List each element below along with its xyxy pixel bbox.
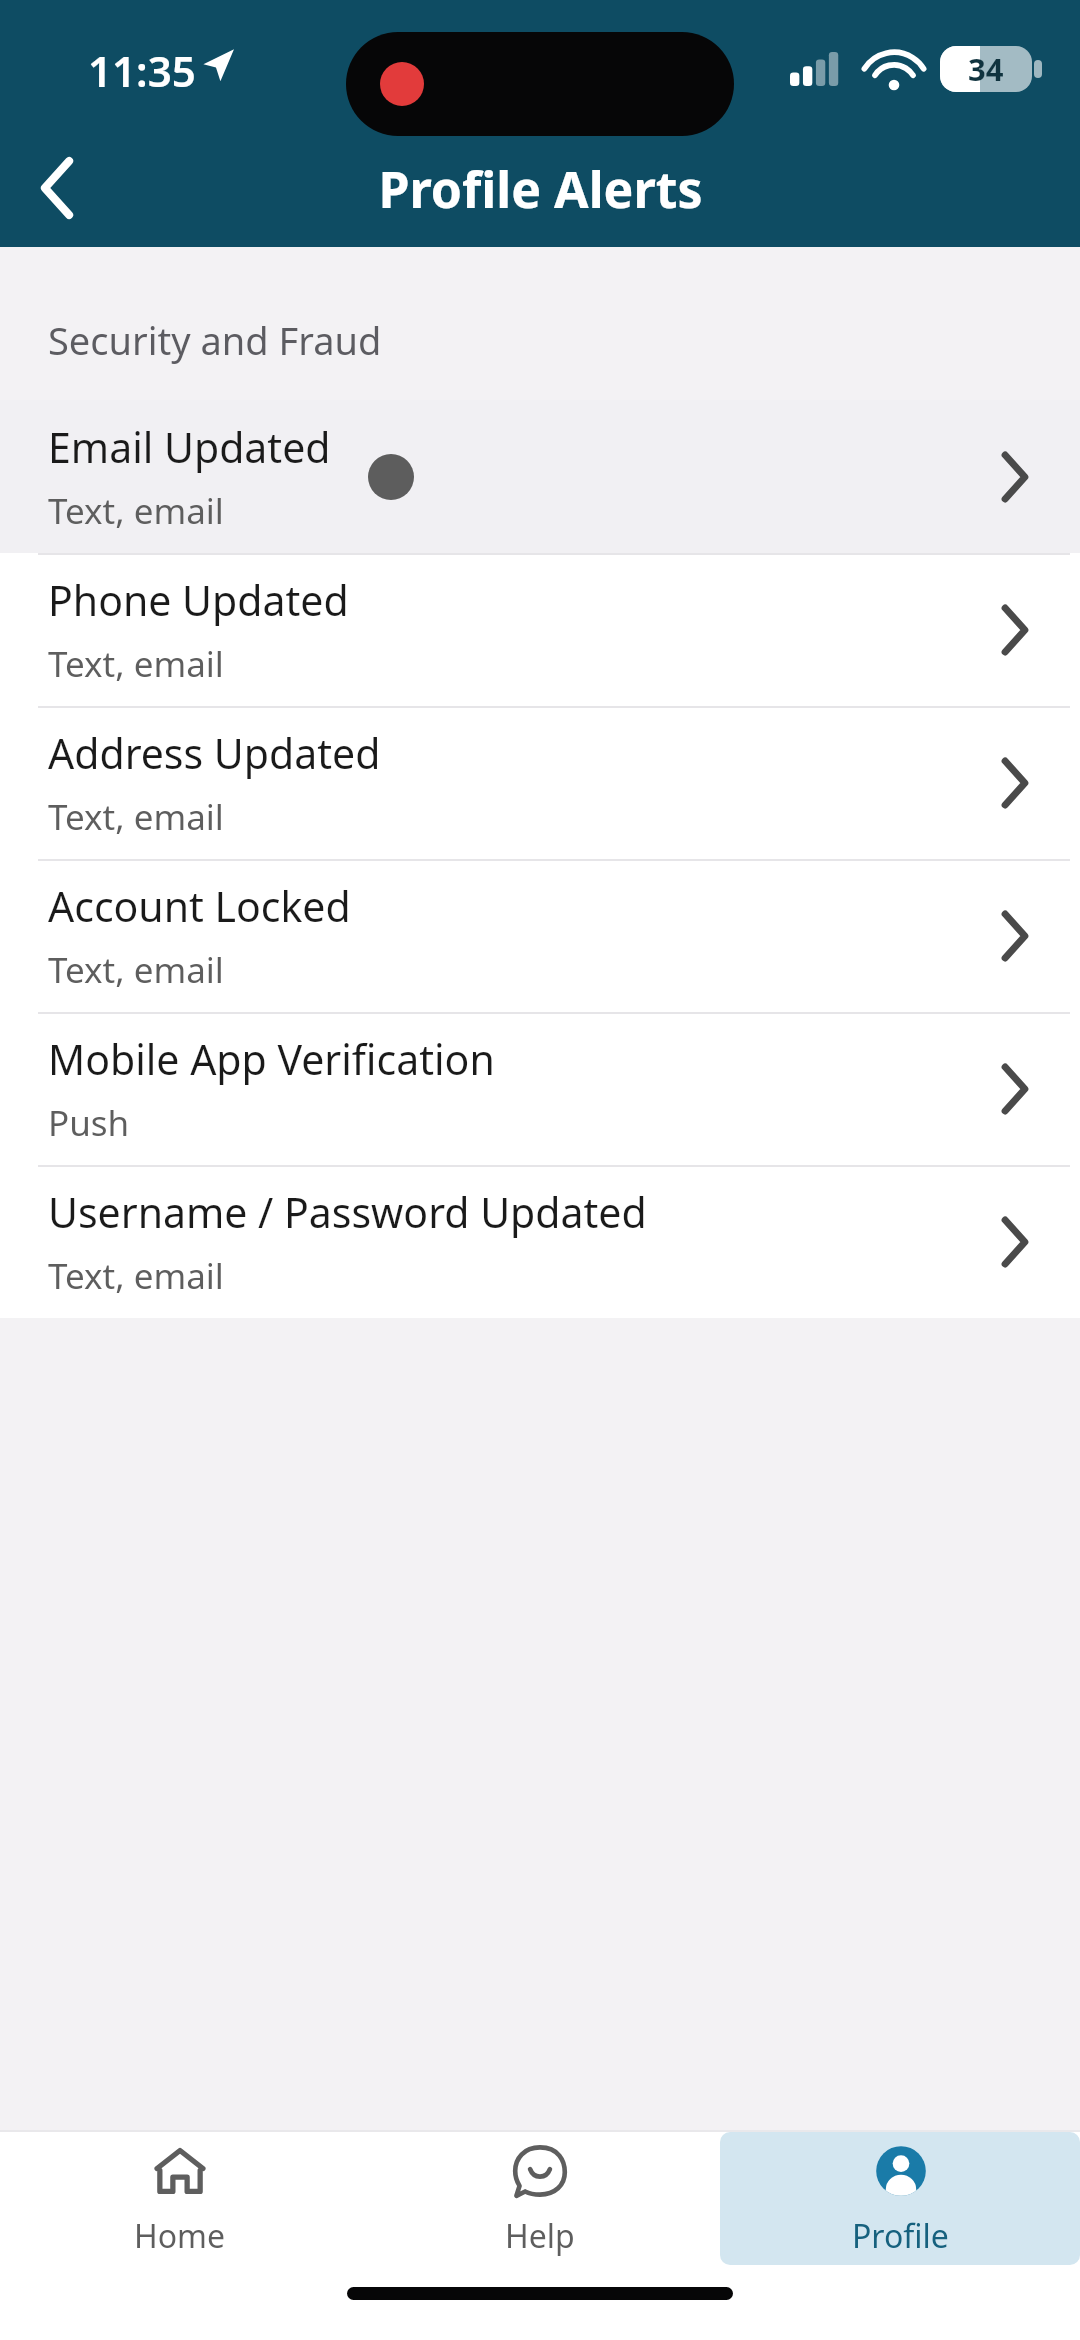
staticText: Mobile App Verification bbox=[48, 1031, 495, 1087]
staticText: 34 bbox=[968, 48, 1004, 90]
button[interactable]: Phone Updated bbox=[0, 553, 1080, 706]
staticText: Home bbox=[134, 2214, 226, 2258]
staticText: Text, email bbox=[48, 946, 224, 994]
staticText: Address Updated bbox=[48, 725, 381, 781]
button[interactable]: Back bbox=[14, 145, 100, 231]
staticText: Text, email bbox=[48, 793, 224, 841]
button[interactable]: Account Locked bbox=[0, 859, 1080, 1012]
staticText: Account Locked bbox=[48, 878, 351, 934]
staticText: Text, email bbox=[48, 487, 224, 535]
button[interactable]: Help bbox=[360, 2132, 720, 2265]
staticText: Username / Password Updated bbox=[48, 1184, 647, 1240]
button[interactable]: Profile bbox=[720, 2132, 1080, 2265]
button[interactable]: Email Updated bbox=[0, 400, 1080, 553]
staticText: Phone Updated bbox=[48, 572, 349, 628]
staticText: Profile Alerts bbox=[378, 155, 703, 223]
staticText: Push bbox=[48, 1099, 130, 1147]
button[interactable]: Address Updated bbox=[0, 706, 1080, 859]
button[interactable]: Username / Password Updated bbox=[0, 1165, 1080, 1318]
staticText: Text, email bbox=[48, 640, 224, 688]
staticText: Security and Fraud bbox=[48, 314, 382, 366]
staticText: 11:35 bbox=[88, 42, 196, 99]
button[interactable]: Mobile App Verification bbox=[0, 1012, 1080, 1165]
staticText: Email Updated bbox=[48, 419, 331, 475]
staticText: Text, email bbox=[48, 1252, 224, 1300]
staticText: Profile bbox=[852, 2214, 949, 2258]
button[interactable]: Home bbox=[0, 2132, 360, 2265]
staticText: Help bbox=[505, 2214, 575, 2258]
